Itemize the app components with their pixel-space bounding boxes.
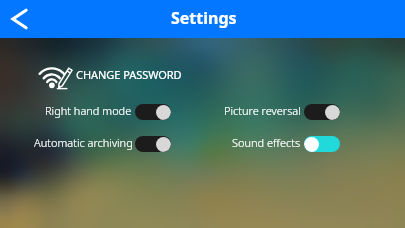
button[interactable]: CHANGE PASSWORD	[38, 64, 184, 90]
button[interactable]: Toggle	[135, 104, 171, 120]
button[interactable]: Sound effects	[91, 131, 301, 153]
button[interactable]: Toggle	[135, 136, 171, 152]
button[interactable]: Picture reversal	[91, 99, 301, 121]
staticText: CHANGE PASSWORD	[76, 67, 182, 82]
button[interactable]: Automatic archiving	[0, 131, 133, 153]
staticText: Settings	[171, 7, 237, 29]
staticText: Automatic archiving	[34, 135, 133, 150]
button[interactable]: Toggle	[304, 104, 340, 120]
button[interactable]: Toggle	[304, 136, 340, 152]
staticText: Right hand mode	[45, 103, 132, 118]
button[interactable]: Right hand mode	[0, 99, 132, 121]
staticText: Picture reversal	[224, 103, 301, 118]
button[interactable]: Back	[0, 0, 38, 38]
staticText: Sound effects	[232, 135, 301, 150]
